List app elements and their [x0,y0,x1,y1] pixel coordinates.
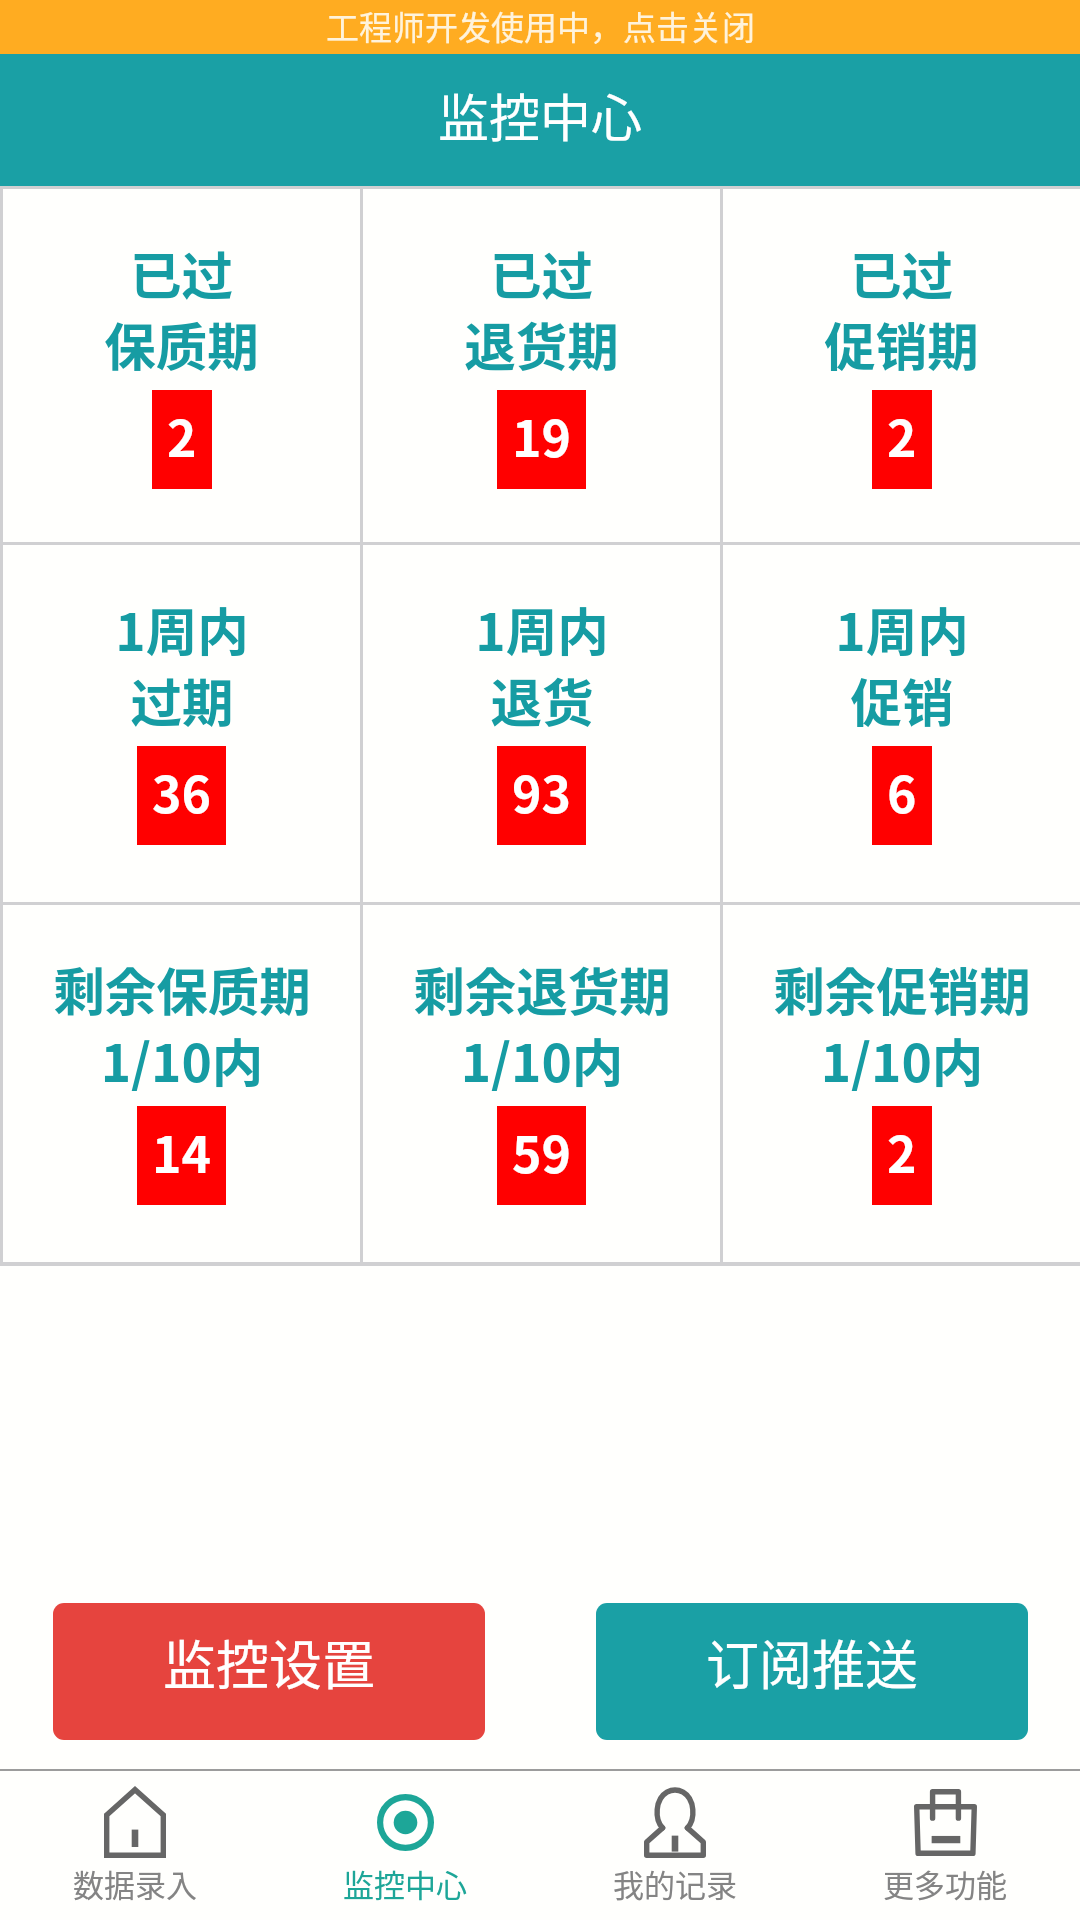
staticText: 93 [512,755,571,827]
button[interactable]: 剩余保质期 1/10内 [3,905,360,1262]
staticText: 14 [152,1115,211,1187]
button[interactable]: 剩余促销期 1/10内 [723,905,1080,1262]
staticText: 监控设置 [163,1624,375,1701]
staticText: 1周内 过期 [115,591,249,737]
staticText: 剩余促销期 1/10内 [773,951,1031,1097]
button[interactable]: 已过 促销期 [723,189,1080,542]
button[interactable]: 1周内 促销 [723,545,1080,902]
staticText: 工程师开发使用中，点击关闭 [326,2,755,50]
staticText: 2 [887,1115,917,1187]
staticText: 我的记录 [613,1861,737,1906]
button[interactable]: 已过 退货期 [363,189,720,542]
staticText: 已过 促销期 [824,235,979,381]
button[interactable]: 已过 保质期 [3,189,360,542]
button[interactable]: 监控设置 [53,1603,485,1740]
button[interactable]: 数据录入 [0,1771,270,1920]
staticText: 监控中心 [438,78,643,152]
staticText: 59 [512,1115,571,1187]
button[interactable]: 订阅推送 [596,1603,1028,1740]
staticText: 1周内 促销 [835,591,969,737]
staticText: 36 [152,755,211,827]
staticText: 剩余保质期 1/10内 [53,951,311,1097]
staticText: 2 [167,399,197,471]
staticText: 6 [887,755,917,827]
button[interactable]: 剩余退货期 1/10内 [363,905,720,1262]
staticText: 数据录入 [73,1861,197,1906]
staticText: 监控中心 [343,1861,467,1906]
staticText: 已过 保质期 [104,235,259,381]
staticText: 订阅推送 [706,1624,918,1701]
staticText: 已过 退货期 [464,235,619,381]
button[interactable]: 监控中心 [270,1771,540,1920]
button[interactable]: 我的记录 [540,1771,810,1920]
staticText: 1周内 退货 [475,591,609,737]
button[interactable]: 更多功能 [810,1771,1080,1920]
button[interactable]: 1周内 退货 [363,545,720,902]
staticText: 2 [887,399,917,471]
button[interactable]: 1周内 过期 [3,545,360,902]
button[interactable]: 工程师开发使用中，点击关闭 [0,0,1080,54]
staticText: 剩余退货期 1/10内 [413,951,671,1097]
staticText: 19 [512,399,571,471]
staticText: 更多功能 [883,1861,1007,1906]
